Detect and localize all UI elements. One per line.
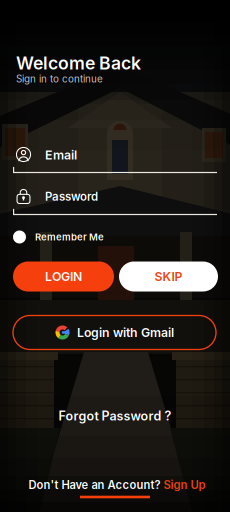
button[interactable]: Login with Gmail bbox=[13, 315, 216, 349]
staticText: SKIP bbox=[154, 269, 182, 284]
staticText: Sign Up bbox=[163, 478, 205, 492]
staticText: Email bbox=[45, 147, 77, 162]
staticText: Password bbox=[45, 190, 98, 203]
staticText: Welcome Back bbox=[16, 52, 141, 74]
staticText: Remember Me bbox=[35, 231, 104, 243]
staticText: Don't Have an Account? bbox=[28, 478, 163, 492]
button[interactable]: Forgot Password ? bbox=[40, 407, 190, 425]
staticText: Forgot Password ? bbox=[58, 408, 171, 424]
staticText: LOGIN bbox=[45, 269, 82, 284]
button[interactable]: Remember Me bbox=[13, 229, 123, 245]
staticText: Login with Gmail bbox=[77, 325, 174, 340]
staticText: Sign in to continue bbox=[16, 73, 103, 85]
button[interactable]: SKIP bbox=[119, 261, 218, 291]
button[interactable]: Sign Up bbox=[163, 478, 205, 492]
button[interactable]: LOGIN bbox=[13, 261, 114, 291]
